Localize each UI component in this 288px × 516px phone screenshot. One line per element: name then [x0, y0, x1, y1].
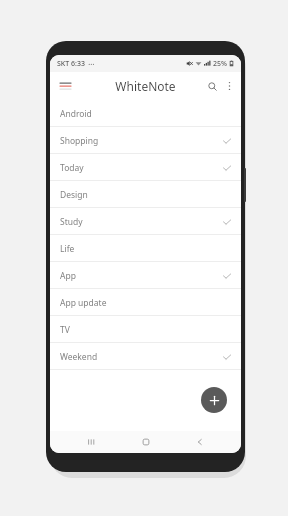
staticText: Study	[60, 216, 83, 228]
staticText: 25%	[213, 59, 227, 69]
button[interactable]: Study	[50, 208, 241, 235]
button[interactable]: Search	[203, 77, 221, 95]
staticText: SKT 6:33	[57, 59, 85, 69]
staticText: Design	[60, 189, 88, 201]
staticText: Life	[60, 243, 75, 255]
staticText: Today	[60, 162, 84, 174]
button[interactable]: More options	[221, 78, 237, 94]
button[interactable]: Android	[50, 100, 241, 127]
button[interactable]: Life	[50, 235, 241, 262]
button[interactable]: Weekend	[50, 343, 241, 370]
staticText: App update	[60, 297, 107, 309]
staticText: Weekend	[60, 351, 98, 363]
staticText: TV	[60, 324, 70, 336]
button[interactable]: TV	[50, 316, 241, 343]
button[interactable]: App update	[50, 289, 241, 316]
button[interactable]: Design	[50, 181, 241, 208]
button[interactable]: Add note	[201, 387, 227, 413]
button[interactable]: Recent apps	[78, 431, 104, 453]
button[interactable]: App	[50, 262, 241, 289]
button[interactable]: Shopping	[50, 127, 241, 154]
button[interactable]: Back	[187, 431, 213, 453]
button[interactable]: Today	[50, 154, 241, 181]
staticText: Shopping	[60, 135, 99, 147]
button[interactable]: Open navigation menu	[56, 77, 74, 95]
staticText: App	[60, 270, 76, 282]
button[interactable]: Home	[133, 431, 159, 453]
staticText: WhiteNote	[115, 78, 176, 94]
staticText: Android	[60, 108, 92, 120]
